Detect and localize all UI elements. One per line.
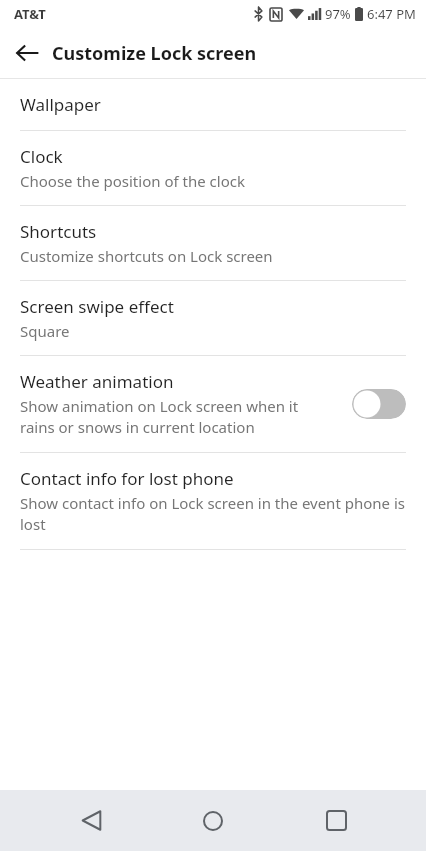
button[interactable]: Contact info for lost phone <box>0 453 426 549</box>
staticText: Square <box>20 321 70 341</box>
button[interactable]: Recent apps <box>304 790 368 851</box>
staticText: Customize shortcuts on Lock screen <box>20 246 273 266</box>
staticText: Show contact info on Lock screen in the … <box>20 493 406 535</box>
staticText: Customize Lock screen <box>52 41 257 66</box>
staticText: Choose the position of the clock <box>20 171 245 191</box>
staticText: Shortcuts <box>20 220 97 243</box>
button[interactable]: Home <box>181 790 245 851</box>
staticText: Show animation on Lock screen when it ra… <box>20 396 320 438</box>
staticText: Wallpaper <box>20 93 101 116</box>
staticText: 6:47 PM <box>367 5 416 23</box>
button[interactable]: Weather animation toggle <box>352 389 406 419</box>
staticText: AT&T <box>14 5 46 23</box>
button[interactable]: Back <box>8 34 46 72</box>
button[interactable]: Back <box>59 790 123 851</box>
staticText: Weather animation <box>20 370 174 393</box>
staticText: Contact info for lost phone <box>20 467 234 490</box>
button[interactable]: Screen swipe effect <box>0 281 426 355</box>
staticText: Screen swipe effect <box>20 295 174 318</box>
staticText: 97% <box>325 5 351 23</box>
staticText: Clock <box>20 145 63 168</box>
button[interactable]: Weather animation <box>0 356 426 452</box>
button[interactable]: Clock <box>0 131 426 205</box>
button[interactable]: Shortcuts <box>0 206 426 280</box>
button[interactable]: Wallpaper <box>0 79 426 130</box>
